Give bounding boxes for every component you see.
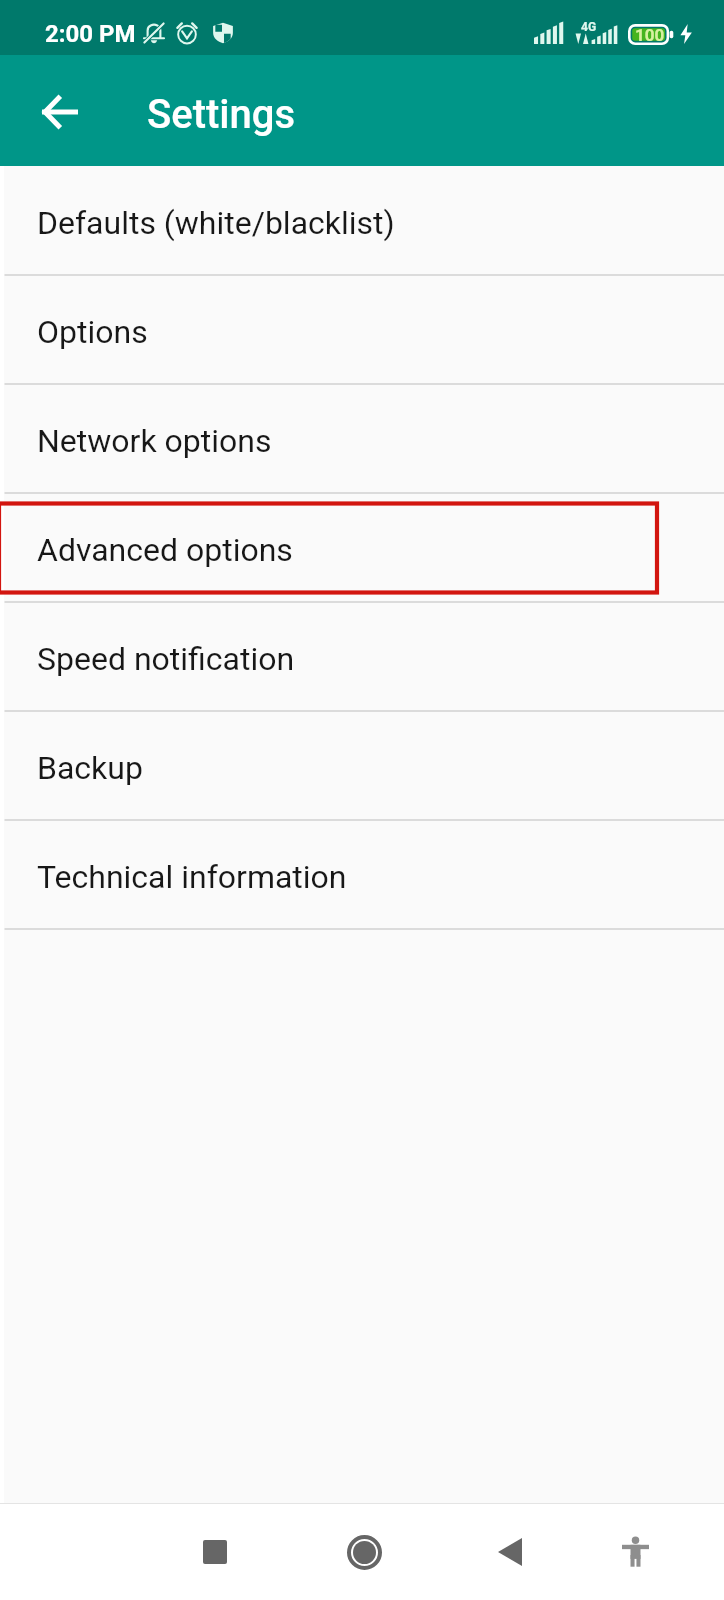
staticText: 4G: [581, 20, 597, 34]
button[interactable]: Options: [0, 275, 724, 384]
button[interactable]: Home: [336, 1524, 392, 1580]
button[interactable]: Back: [35, 87, 85, 137]
staticText: Settings: [147, 91, 296, 138]
button[interactable]: Backup: [0, 711, 724, 820]
button[interactable]: Accessibility: [607, 1524, 663, 1580]
staticText: Network options: [37, 422, 272, 460]
staticText: Speed notification: [37, 640, 295, 678]
staticText: 2:00 PM: [45, 20, 136, 48]
button[interactable]: Network options: [0, 384, 724, 493]
button[interactable]: Technical information: [0, 820, 724, 929]
button[interactable]: Speed notification: [0, 602, 724, 711]
button[interactable]: Advanced options: [0, 493, 724, 602]
staticText: 100: [635, 25, 665, 45]
staticText: Advanced options: [37, 531, 293, 569]
staticText: Defaults (white/blacklist): [37, 204, 395, 242]
staticText: Options: [37, 313, 148, 351]
button[interactable]: Defaults (white/blacklist): [0, 166, 724, 275]
staticText: Technical information: [37, 858, 347, 896]
button[interactable]: Recents: [187, 1524, 243, 1580]
button[interactable]: Back: [482, 1524, 538, 1580]
staticText: Backup: [37, 749, 143, 787]
